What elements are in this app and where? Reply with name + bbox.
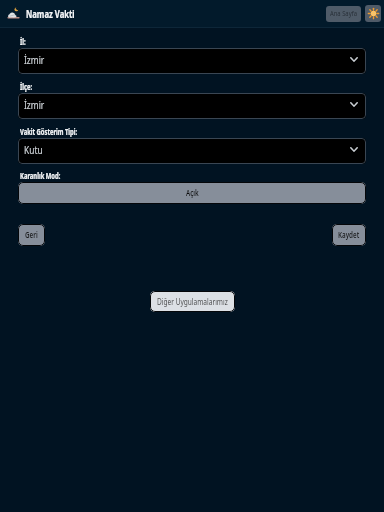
- button[interactable]: Geri: [18, 224, 45, 246]
- button[interactable]: Kutu: [18, 138, 366, 164]
- staticText: Vakit Gösterim Tipi:: [20, 126, 78, 137]
- staticText: İzmir: [24, 98, 45, 112]
- button[interactable]: Diğer Uygulamalarımız: [150, 291, 235, 312]
- staticText: Karanlık Mod:: [20, 170, 61, 181]
- staticText: İl:: [20, 36, 26, 47]
- button[interactable]: Toggle light and dark theme: [365, 5, 381, 22]
- button[interactable]: Kaydet: [332, 224, 366, 246]
- staticText: Diğer Uygulamalarımız: [157, 296, 228, 307]
- button[interactable]: Açık: [18, 182, 366, 204]
- button[interactable]: İzmir: [18, 48, 366, 74]
- button[interactable]: Ana Sayfa: [326, 6, 361, 22]
- staticText: Geri: [25, 229, 38, 240]
- staticText: İzmir: [24, 53, 45, 67]
- button[interactable]: İzmir: [18, 93, 366, 119]
- staticText: Namaz Vakti: [26, 6, 75, 21]
- staticText: Açık: [186, 187, 199, 198]
- staticText: Kutu: [24, 143, 43, 157]
- staticText: Kaydet: [338, 229, 360, 240]
- staticText: Ana Sayfa: [330, 8, 357, 18]
- staticText: İlçe:: [20, 81, 32, 92]
